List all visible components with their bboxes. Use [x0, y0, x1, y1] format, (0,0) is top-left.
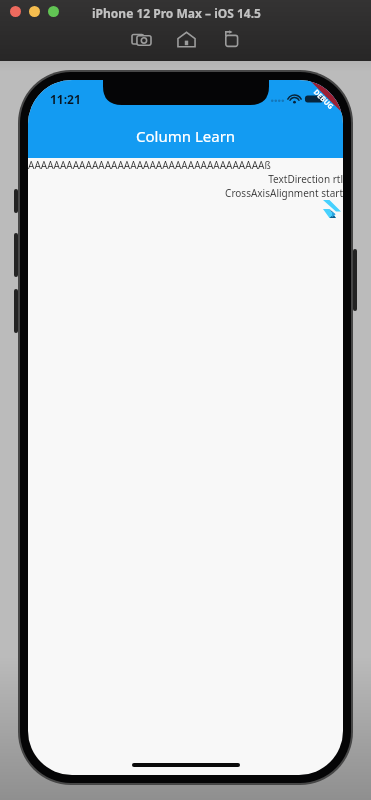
staticText: 11:21: [50, 91, 81, 107]
button[interactable]: Close: [10, 6, 21, 17]
staticText: TextDirection rtl: [28, 172, 343, 186]
staticText: iPhone 12 Pro Max – iOS 14.5: [92, 5, 261, 21]
button[interactable]: Full screen: [48, 6, 59, 17]
staticText: DEBUG: [311, 88, 336, 112]
staticText: Column Learn: [136, 126, 236, 146]
button[interactable]: Screenshot: [128, 26, 154, 52]
staticText: AAAAAAAAAAAAAAAAAAAAAAAAAAAAAAAAAAAAAß: [28, 158, 343, 172]
button[interactable]: Minimize: [29, 6, 40, 17]
button[interactable]: Rotate: [218, 26, 244, 52]
staticText: CrossAxisAlignment start: [28, 186, 343, 200]
button[interactable]: Home: [173, 26, 199, 52]
